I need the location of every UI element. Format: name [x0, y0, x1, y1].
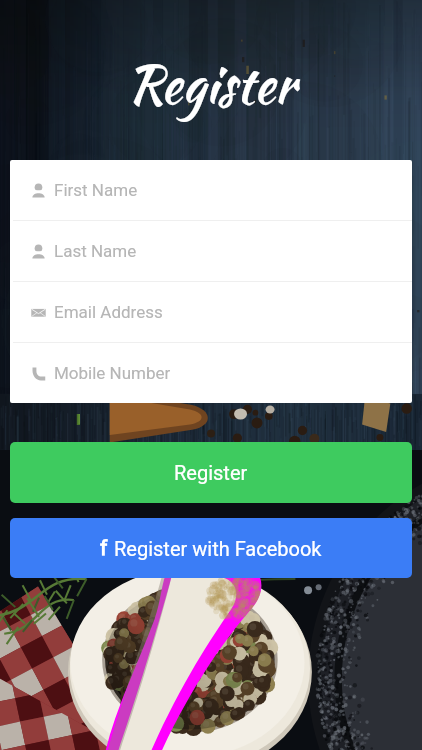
staticText: Email Address — [54, 302, 163, 322]
button[interactable]: Email Address — [10, 282, 412, 342]
staticText: Last Name — [54, 241, 137, 261]
button[interactable]: f — [10, 518, 412, 578]
staticText: Register — [174, 461, 248, 484]
button[interactable]: First Name — [10, 160, 412, 220]
staticText: First Name — [54, 180, 138, 200]
button[interactable]: Last Name — [10, 221, 412, 281]
staticText: Mobile Number — [54, 363, 171, 383]
button[interactable]: Mobile Number — [10, 343, 412, 403]
button[interactable]: Register — [10, 442, 412, 503]
staticText: Register with Facebook — [114, 537, 322, 560]
staticText: Register — [127, 47, 296, 122]
staticText: f — [100, 536, 108, 561]
